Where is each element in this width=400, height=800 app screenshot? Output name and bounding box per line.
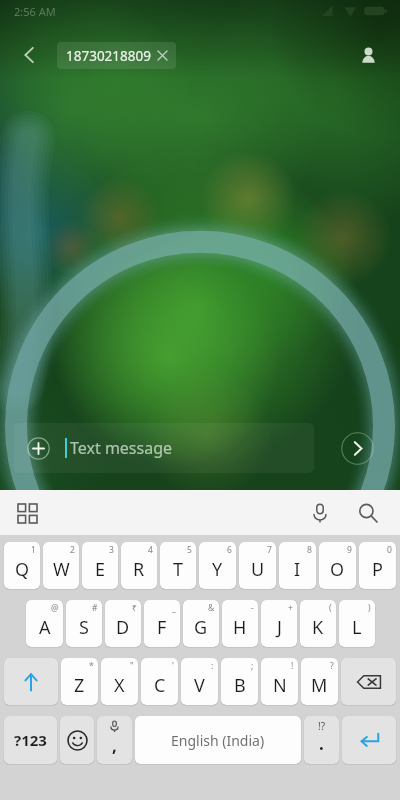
button[interactable]: Backspace [341, 658, 396, 705]
staticText: @ [51, 602, 59, 614]
staticText: _ [172, 602, 176, 614]
button[interactable]: Contacts [348, 35, 388, 75]
button[interactable]: ?123 [4, 716, 57, 764]
staticText: N [273, 673, 287, 698]
staticText: U [251, 557, 265, 582]
staticText: 18730218809 [66, 47, 151, 65]
staticText: ' [172, 660, 174, 672]
button[interactable]: Attach [25, 435, 51, 461]
staticText: O [330, 557, 345, 582]
staticText: ( [329, 602, 332, 614]
staticText: ; [251, 660, 254, 672]
staticText: K [312, 615, 324, 640]
button[interactable]: ₹ [105, 600, 141, 647]
button[interactable]: + [261, 600, 297, 647]
staticText: . [319, 732, 324, 755]
button[interactable]: 4 [121, 542, 157, 589]
button[interactable]: Back [10, 35, 50, 75]
button[interactable]: Attach [14, 423, 314, 473]
button[interactable]: , [97, 716, 132, 764]
staticText: 8 [307, 544, 312, 556]
button[interactable]: ! [261, 658, 298, 705]
staticText: T [173, 557, 184, 582]
staticText: + [288, 602, 293, 614]
button[interactable]: 9 [319, 542, 356, 589]
staticText: V [194, 673, 205, 698]
button[interactable]: Emoji [60, 716, 94, 764]
staticText: 1 [31, 544, 36, 556]
staticText: 7 [267, 544, 272, 556]
button[interactable]: 7 [239, 542, 276, 589]
button[interactable]: - [222, 600, 258, 647]
staticText: Z [74, 673, 85, 698]
staticText: - [251, 602, 254, 614]
staticText: 0 [387, 544, 392, 556]
button[interactable]: _ [144, 600, 180, 647]
button[interactable]: 2 [43, 542, 79, 589]
staticText: C [154, 673, 166, 698]
button[interactable]: ? [301, 658, 338, 705]
staticText: D [116, 615, 130, 640]
staticText: ! [291, 660, 294, 672]
staticText: M [311, 673, 328, 698]
staticText: !? [318, 719, 326, 733]
staticText: ₹ [132, 602, 137, 614]
button[interactable]: " [101, 658, 138, 705]
staticText: X [114, 673, 125, 698]
staticText: J [277, 615, 282, 640]
button[interactable]: ; [221, 658, 258, 705]
button[interactable]: Search [350, 495, 386, 531]
button[interactable]: @ [26, 600, 63, 647]
staticText: R [133, 557, 145, 582]
button[interactable]: 8 [279, 542, 316, 589]
staticText: & [208, 602, 215, 614]
button[interactable]: ' [141, 658, 178, 705]
staticText: 3 [109, 544, 114, 556]
button[interactable]: * [61, 658, 98, 705]
button[interactable]: 3 [82, 542, 118, 589]
button[interactable]: Keyboard options [10, 496, 44, 530]
button[interactable]: ( [300, 600, 336, 647]
button[interactable]: Shift [4, 658, 58, 705]
staticText: * [89, 660, 94, 672]
button[interactable]: Send [340, 431, 374, 465]
staticText: B [234, 673, 246, 698]
button[interactable]: ) [339, 600, 375, 647]
staticText: 2 [70, 544, 75, 556]
button[interactable]: 18730218809 [66, 42, 167, 69]
staticText: 9 [347, 544, 352, 556]
staticText: E [95, 557, 106, 582]
staticText: L [352, 615, 362, 640]
button[interactable]: : [181, 658, 218, 705]
staticText: , [112, 734, 117, 757]
button[interactable]: 0 [359, 542, 396, 589]
button[interactable]: # [66, 600, 102, 647]
staticText: Y [212, 557, 223, 582]
button[interactable]: 1 [4, 542, 40, 589]
staticText: 5 [187, 544, 192, 556]
staticText: Q [15, 557, 30, 582]
button[interactable]: Voice input [302, 495, 338, 531]
staticText: P [372, 557, 383, 582]
staticText: 2:56 AM [14, 4, 56, 19]
staticText: English (India) [171, 731, 265, 750]
button[interactable]: 6 [199, 542, 236, 589]
staticText: : [211, 660, 214, 672]
button[interactable]: 5 [160, 542, 196, 589]
staticText: 6 [227, 544, 232, 556]
staticText: ?123 [14, 730, 47, 750]
staticText: ) [368, 602, 371, 614]
staticText: Text message [70, 437, 173, 459]
staticText: A [39, 615, 51, 640]
staticText: W [53, 557, 70, 582]
button[interactable]: & [183, 600, 219, 647]
staticText: S [79, 615, 89, 640]
button[interactable]: English (India) [135, 716, 301, 764]
staticText: # [92, 602, 98, 614]
staticText: I [294, 557, 301, 582]
staticText: ? [330, 660, 334, 672]
button[interactable]: Enter [342, 716, 396, 764]
button[interactable]: !? [304, 716, 339, 764]
staticText: 4 [148, 544, 153, 556]
staticText: F [157, 615, 167, 640]
